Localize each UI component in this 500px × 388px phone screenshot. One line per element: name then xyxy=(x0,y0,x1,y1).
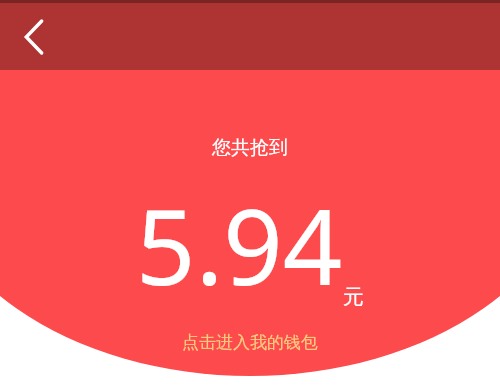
staticText: 元 xyxy=(343,284,364,310)
staticText: 5.94 xyxy=(136,174,343,316)
staticText: 您共抢到 xyxy=(212,136,288,160)
button[interactable]: 点击进入我的钱包 xyxy=(170,328,330,357)
button[interactable]: Back xyxy=(6,9,62,65)
staticText: 点击进入我的钱包 xyxy=(182,332,318,353)
